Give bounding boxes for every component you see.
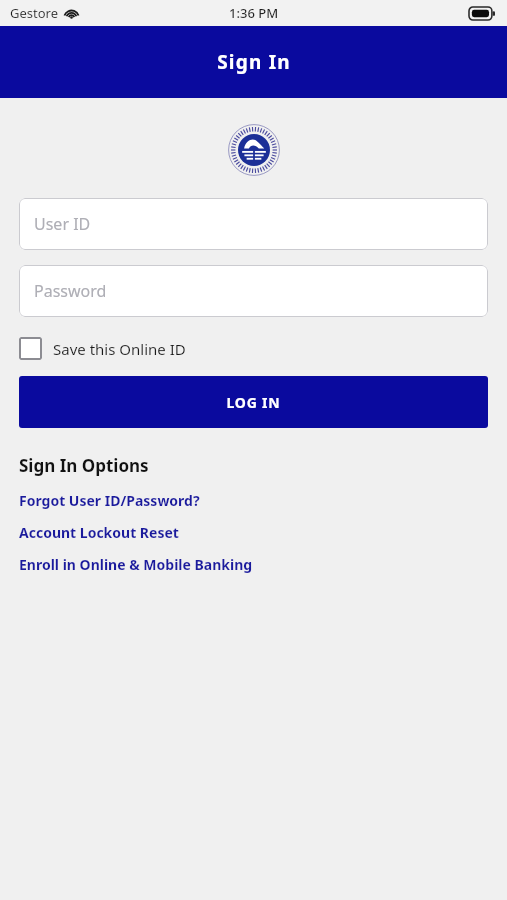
- staticText: Save this Online ID: [53, 339, 186, 359]
- button[interactable]: LOG IN: [19, 376, 488, 428]
- staticText: Enroll in Online & Mobile Banking: [19, 555, 253, 574]
- staticText: Sign In: [217, 49, 291, 75]
- staticText: Account Lockout Reset: [19, 523, 179, 542]
- staticText: Gestore: [10, 4, 59, 22]
- button[interactable]: Forgot User ID/Password?: [19, 491, 200, 510]
- staticText: Forgot User ID/Password?: [19, 491, 200, 510]
- button[interactable]: Password: [19, 265, 488, 317]
- button[interactable]: User ID: [19, 198, 488, 250]
- staticText: User ID: [34, 213, 91, 235]
- staticText: Sign In Options: [19, 454, 149, 477]
- staticText: LOG IN: [226, 393, 281, 412]
- staticText: 1:36 PM: [229, 4, 279, 22]
- button[interactable]: Enroll in Online & Mobile Banking: [19, 555, 253, 574]
- staticText: Password: [34, 280, 107, 302]
- button[interactable]: Save this Online ID: [19, 337, 488, 360]
- button[interactable]: Account Lockout Reset: [19, 523, 179, 542]
